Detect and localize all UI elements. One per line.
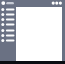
button[interactable]: Menu item xyxy=(0,28,16,33)
button[interactable]: Menu item xyxy=(0,17,16,22)
button[interactable]: Menu item xyxy=(0,38,16,43)
button[interactable]: Menu item xyxy=(0,33,16,38)
button[interactable]: More options xyxy=(51,0,65,7)
button[interactable]: Menu item xyxy=(0,22,16,27)
button[interactable]: Menu item xyxy=(0,12,16,17)
button[interactable]: Menu item xyxy=(0,7,16,12)
button[interactable]: Open navigation menu xyxy=(0,0,16,7)
